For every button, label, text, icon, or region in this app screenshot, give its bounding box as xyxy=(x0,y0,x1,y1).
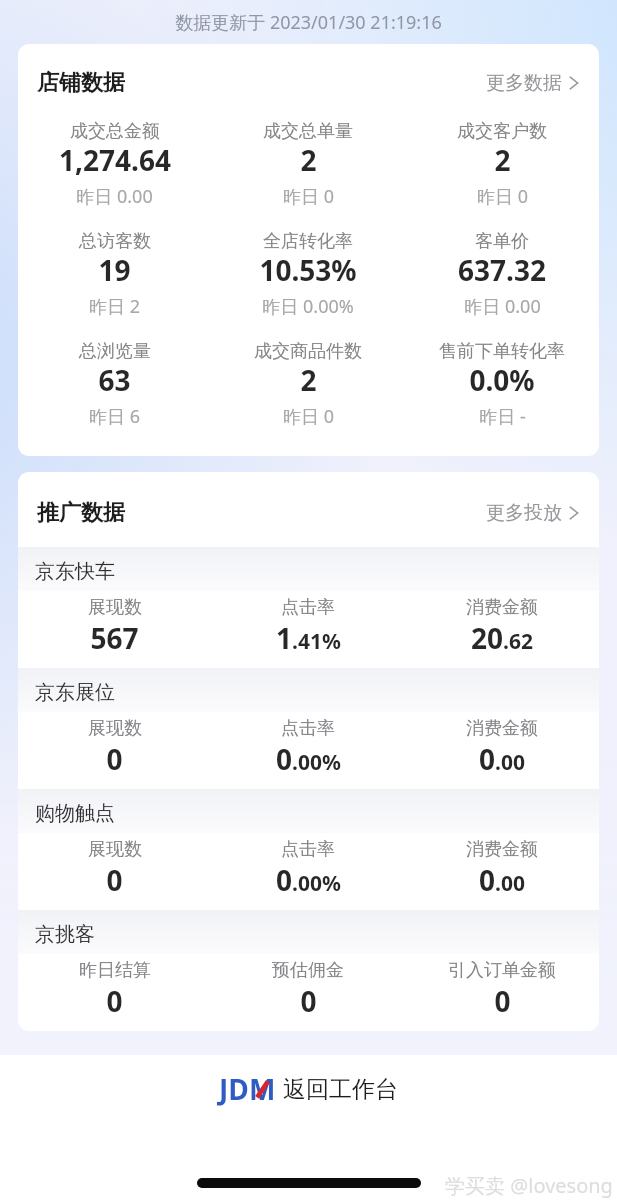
staticText: 0 xyxy=(300,982,317,1020)
staticText: 0.00% xyxy=(276,740,341,778)
staticText: JD xyxy=(219,1070,249,1108)
staticText: 0 xyxy=(106,740,123,778)
staticText: 20.62 xyxy=(471,619,533,657)
staticText: 成交商品件数 xyxy=(254,340,362,363)
staticText: 成交总金额 xyxy=(70,120,160,143)
button[interactable]: 更多数据 xyxy=(486,71,580,95)
staticText: 昨日 0.00 xyxy=(464,294,541,319)
staticText: 2 xyxy=(494,141,511,179)
staticText: 成交总单量 xyxy=(263,120,353,143)
staticText: 0.00 xyxy=(479,740,525,778)
staticText: 消费金额 xyxy=(466,717,538,740)
staticText: 昨日 0 xyxy=(283,184,334,209)
staticText: 2 xyxy=(300,141,317,179)
staticText: 昨日 - xyxy=(479,404,526,429)
staticText: 成交客户数 xyxy=(457,120,547,143)
staticText: 0 xyxy=(106,982,123,1020)
staticText: 点击率 xyxy=(281,717,335,740)
staticText: 总浏览量 xyxy=(79,340,151,363)
staticText: 消费金额 xyxy=(466,838,538,861)
staticText: 展现数 xyxy=(88,596,142,619)
button[interactable]: JD xyxy=(219,1070,398,1108)
staticText: 京东快车 xyxy=(35,559,115,584)
staticText: 客单价 xyxy=(475,230,529,253)
staticText: 店铺数据 xyxy=(37,69,125,97)
staticText: 2 xyxy=(300,361,317,399)
staticText: 消费金额 xyxy=(466,596,538,619)
staticText: 0.0% xyxy=(469,361,535,399)
staticText: 返回工作台 xyxy=(283,1075,398,1104)
staticText: 昨日 0.00 xyxy=(76,184,153,209)
staticText: M xyxy=(249,1070,276,1108)
staticText: 京东展位 xyxy=(35,680,115,705)
staticText: 昨日 6 xyxy=(89,404,140,429)
staticText: 昨日结算 xyxy=(79,959,151,982)
staticText: 预估佣金 xyxy=(272,959,344,982)
staticText: 567 xyxy=(90,619,139,657)
staticText: 售前下单转化率 xyxy=(439,340,565,363)
staticText: 京挑客 xyxy=(35,922,95,947)
staticText: 展现数 xyxy=(88,838,142,861)
staticText: 0 xyxy=(106,861,123,899)
staticText: 点击率 xyxy=(281,596,335,619)
staticText: 1.41% xyxy=(276,619,341,657)
staticText: 推广数据 xyxy=(37,499,125,527)
staticText: 更多投放 xyxy=(486,501,562,525)
staticText: 637.32 xyxy=(458,251,546,289)
staticText: 昨日 2 xyxy=(89,294,140,319)
staticText: 63 xyxy=(98,361,131,399)
button[interactable]: 更多投放 xyxy=(486,501,580,525)
staticText: 昨日 0 xyxy=(477,184,528,209)
staticText: 昨日 0 xyxy=(283,404,334,429)
staticText: 0 xyxy=(494,982,511,1020)
staticText: 展现数 xyxy=(88,717,142,740)
staticText: 点击率 xyxy=(281,838,335,861)
staticText: 学买卖 @lovesong xyxy=(445,1172,613,1199)
staticText: 10.53% xyxy=(259,251,357,289)
staticText: 总访客数 xyxy=(79,230,151,253)
staticText: 昨日 0.00% xyxy=(262,294,354,319)
staticText: 全店转化率 xyxy=(263,230,353,253)
staticText: 数据更新于 2023/01/30 21:19:16 xyxy=(175,10,442,35)
staticText: 19 xyxy=(98,251,131,289)
staticText: 引入订单金额 xyxy=(448,959,556,982)
staticText: 购物触点 xyxy=(35,801,115,826)
staticText: 0.00% xyxy=(276,861,341,899)
staticText: 0.00 xyxy=(479,861,525,899)
staticText: 更多数据 xyxy=(486,71,562,95)
staticText: 1,274.64 xyxy=(59,141,171,179)
